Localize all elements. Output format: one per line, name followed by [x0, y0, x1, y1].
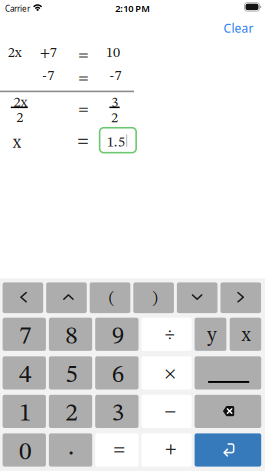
staticText: 1.5 [107, 135, 125, 150]
staticText: = [78, 103, 88, 117]
staticText: × [165, 365, 176, 382]
staticText: 2x [8, 46, 22, 60]
staticText: +7 [40, 46, 57, 60]
staticText: 3 [111, 96, 118, 110]
staticText: . [68, 435, 74, 460]
staticText: 2x [13, 96, 27, 110]
staticText: 2:10 PM [115, 2, 150, 15]
staticText: = [113, 441, 125, 458]
staticText: = [78, 49, 88, 63]
staticText: 3 [112, 401, 125, 426]
staticText: -7 [109, 69, 121, 83]
staticText: 5 [65, 363, 78, 388]
staticText: Carrier [5, 3, 30, 14]
staticText: 7 [19, 324, 32, 349]
staticText: = [77, 134, 89, 150]
staticText: -7 [42, 69, 54, 83]
staticText: 10 [106, 46, 120, 60]
staticText: 4 [19, 363, 32, 388]
staticText: ( [109, 291, 114, 307]
staticText: = [78, 71, 88, 86]
staticText: 1 [19, 401, 32, 426]
staticText: x [241, 326, 250, 346]
staticText: 2 [16, 111, 23, 125]
staticText: ) [152, 291, 157, 307]
staticText: 2 [111, 111, 118, 126]
staticText: Clear [224, 20, 254, 36]
staticText: 8 [65, 324, 78, 349]
staticText: 2 [65, 401, 78, 426]
staticText: 9 [112, 324, 125, 349]
staticText: 6 [112, 363, 125, 388]
staticText: x [13, 134, 21, 152]
staticText: 0 [19, 440, 32, 465]
staticText: ÷ [165, 327, 175, 343]
staticText: y [207, 326, 216, 346]
staticText: + [165, 441, 177, 458]
staticText: − [164, 404, 176, 420]
